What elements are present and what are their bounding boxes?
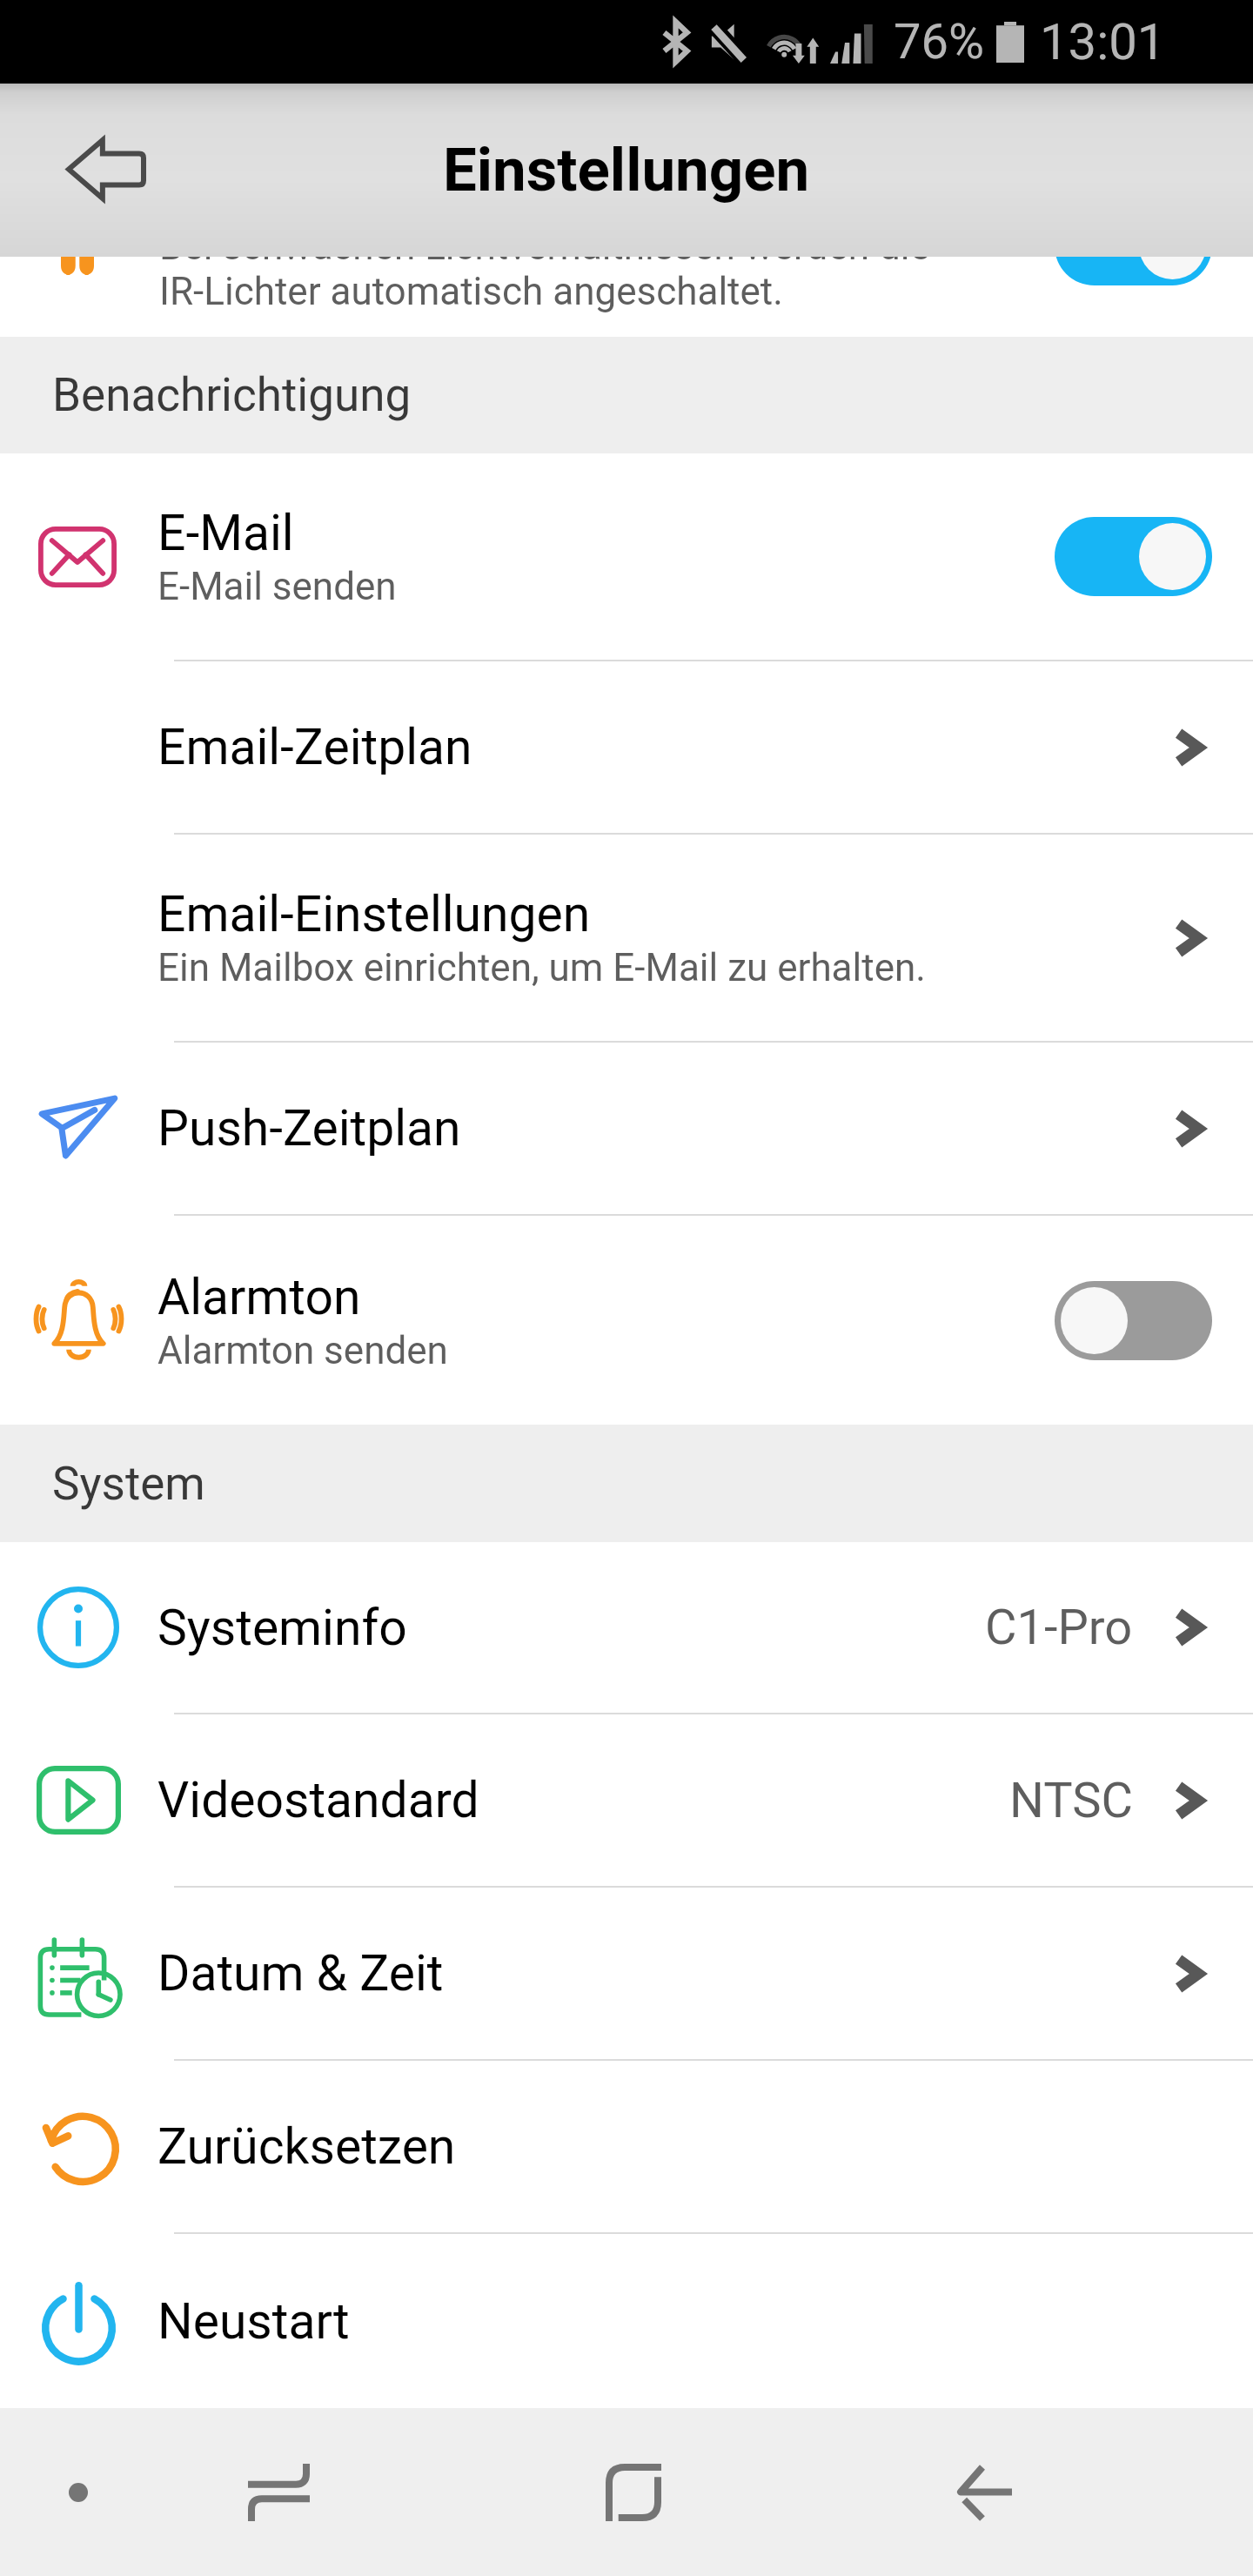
- staticText: Email-Einstellungen: [157, 885, 591, 943]
- staticText: Einstellungen: [443, 135, 810, 205]
- button[interactable]: Recent apps: [209, 2427, 348, 2558]
- staticText: 13:01: [1040, 12, 1166, 71]
- staticText: E-Mail senden: [157, 564, 397, 609]
- staticText: Neustart: [157, 2292, 1173, 2351]
- staticText: Ein Mailbox einrichten, um E-Mail zu erh…: [157, 945, 926, 990]
- staticText: 76%: [894, 13, 984, 70]
- button[interactable]: Neustart: [0, 2234, 1253, 2408]
- button[interactable]: Show hidden keys: [22, 2427, 135, 2558]
- staticText: Bei schwachen Lichtverhältnissen werden …: [159, 257, 930, 269]
- button[interactable]: Email-Zeitplan: [0, 661, 1253, 833]
- button[interactable]: E-Mail: [0, 453, 1253, 660]
- button[interactable]: Back: [915, 2427, 1054, 2558]
- staticText: Videostandard: [157, 1771, 1008, 1829]
- staticText: System: [52, 1457, 205, 1511]
- button[interactable]: Switch on: [1055, 517, 1212, 596]
- staticText: Push-Zeitplan: [157, 1099, 1173, 1157]
- button[interactable]: Videostandard: [0, 1714, 1253, 1886]
- button[interactable]: Systeminfo: [0, 1542, 1253, 1713]
- staticText: E-Mail: [157, 504, 294, 562]
- button[interactable]: Back: [47, 111, 165, 230]
- button[interactable]: Datum & Zeit: [0, 1888, 1253, 2059]
- staticText: Email-Zeitplan: [157, 718, 1174, 776]
- staticText: Zurücksetzen: [157, 2117, 1173, 2176]
- staticText: Alarmton: [157, 1268, 361, 1326]
- staticText: NTSC: [1009, 1772, 1133, 1829]
- button[interactable]: Zurücksetzen: [0, 2061, 1253, 2232]
- button[interactable]: Switch off: [1055, 1281, 1212, 1360]
- staticText: C1-Pro: [985, 1599, 1133, 1656]
- button[interactable]: Home: [564, 2427, 703, 2558]
- staticText: Alarmton senden: [157, 1328, 448, 1373]
- button[interactable]: Bei schwachen Lichtverhältnissen werden …: [0, 257, 1253, 337]
- staticText: Datum & Zeit: [157, 1944, 1173, 2002]
- staticText: IR-Lichter automatisch angeschaltet.: [159, 269, 783, 314]
- staticText: Systeminfo: [157, 1599, 984, 1657]
- button[interactable]: Email-Einstellungen: [0, 835, 1253, 1041]
- button[interactable]: Push-Zeitplan: [0, 1043, 1253, 1214]
- staticText: Benachrichtigung: [52, 368, 412, 422]
- button[interactable]: Alarmton: [0, 1216, 1253, 1425]
